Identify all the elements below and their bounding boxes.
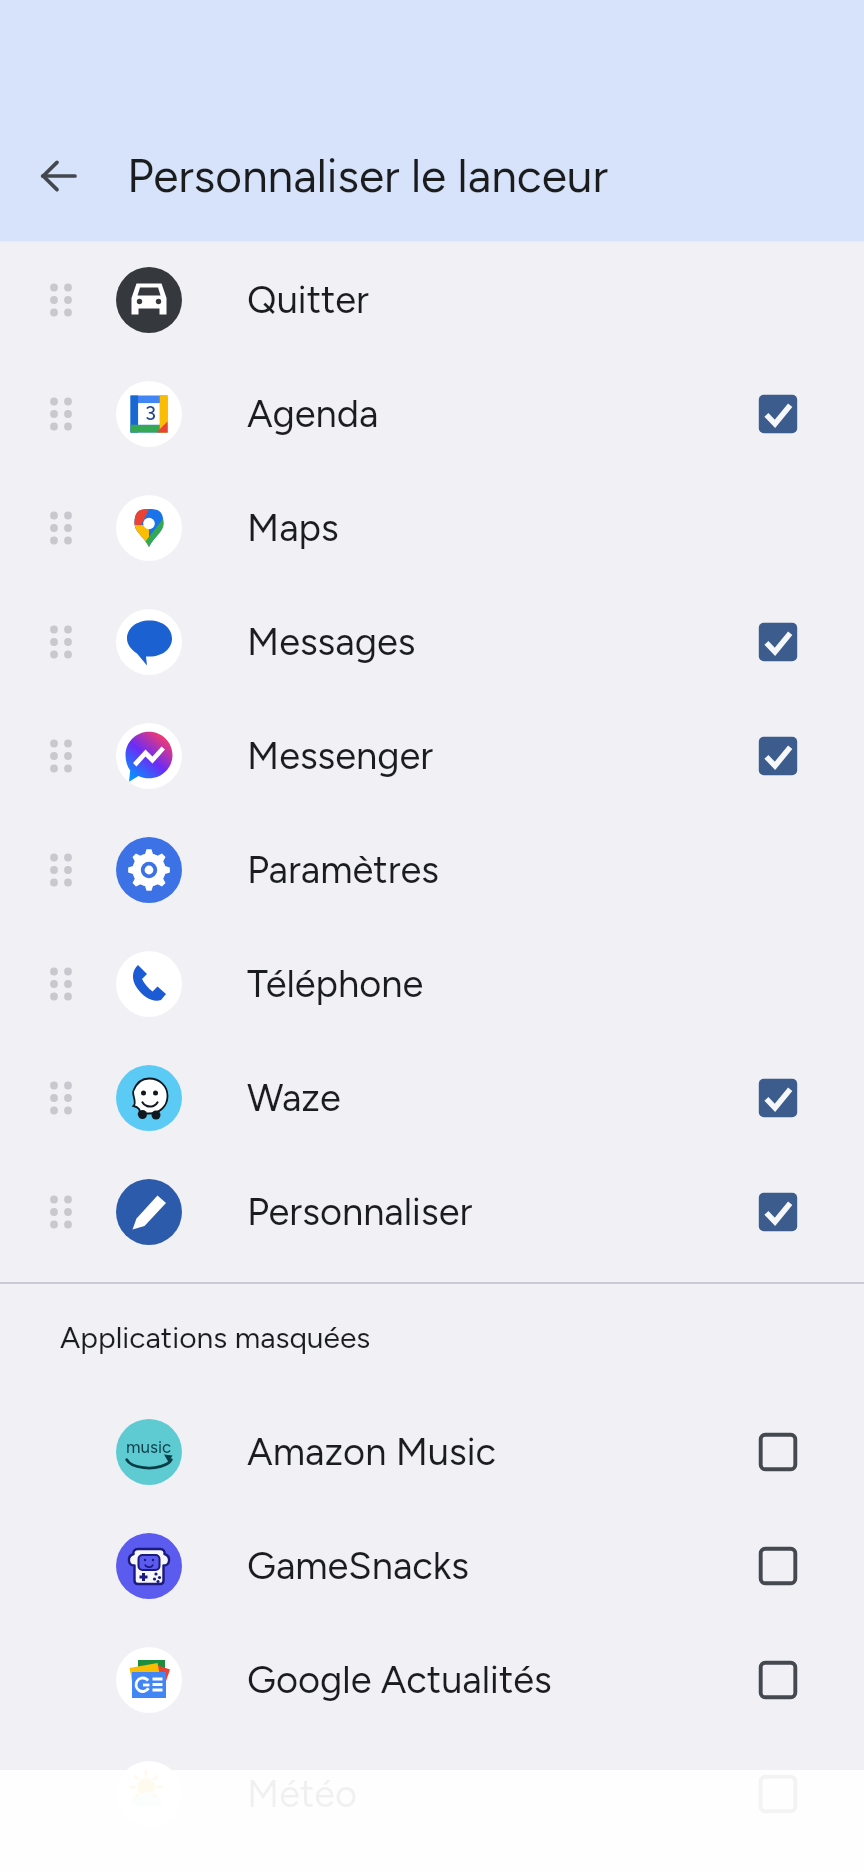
staticText: Applications masquées: [60, 1319, 371, 1355]
button[interactable]: Quitter: [0, 243, 864, 357]
staticText: Paramètres: [247, 847, 440, 893]
staticText: Téléphone: [247, 961, 424, 1007]
button[interactable]: 3: [0, 357, 864, 471]
staticText: Google Actualités: [247, 1657, 552, 1703]
button[interactable]: Messenger: [0, 699, 864, 813]
button[interactable]: GameSnacks: [0, 1509, 864, 1623]
staticText: Messages: [247, 619, 416, 665]
staticText: GameSnacks: [247, 1543, 469, 1589]
button[interactable]: Waze: [0, 1041, 864, 1155]
button[interactable]: Maps: [0, 471, 864, 585]
button[interactable]: music: [0, 1395, 864, 1509]
staticText: Météo: [247, 1771, 358, 1817]
button[interactable]: Personnaliser: [745, 1179, 811, 1245]
button[interactable]: Agenda: [745, 381, 811, 447]
button[interactable]: Google Actualités: [0, 1623, 864, 1737]
button[interactable]: Messenger: [745, 723, 811, 789]
staticText: Quitter: [247, 277, 369, 323]
staticText: Personnaliser: [247, 1189, 473, 1235]
button[interactable]: Météo: [0, 1737, 864, 1851]
staticText: Amazon Music: [247, 1429, 497, 1475]
staticText: Agenda: [247, 391, 379, 437]
button[interactable]: Retour: [16, 133, 102, 219]
button[interactable]: Messages: [745, 609, 811, 675]
button[interactable]: Météo: [745, 1761, 811, 1827]
button[interactable]: Google Actualités: [745, 1647, 811, 1713]
button[interactable]: Paramètres: [0, 813, 864, 927]
staticText: Personnaliser le lanceur: [127, 148, 609, 203]
staticText: music: [126, 1437, 172, 1457]
button[interactable]: GameSnacks: [745, 1533, 811, 1599]
staticText: 3: [145, 401, 156, 425]
button[interactable]: Personnaliser: [0, 1155, 864, 1269]
button[interactable]: Téléphone: [0, 927, 864, 1041]
button[interactable]: Waze: [745, 1065, 811, 1131]
button[interactable]: Messages: [0, 585, 864, 699]
staticText: Messenger: [247, 733, 434, 779]
button[interactable]: Amazon Music: [745, 1419, 811, 1485]
staticText: Waze: [247, 1075, 341, 1121]
staticText: Maps: [247, 505, 339, 551]
